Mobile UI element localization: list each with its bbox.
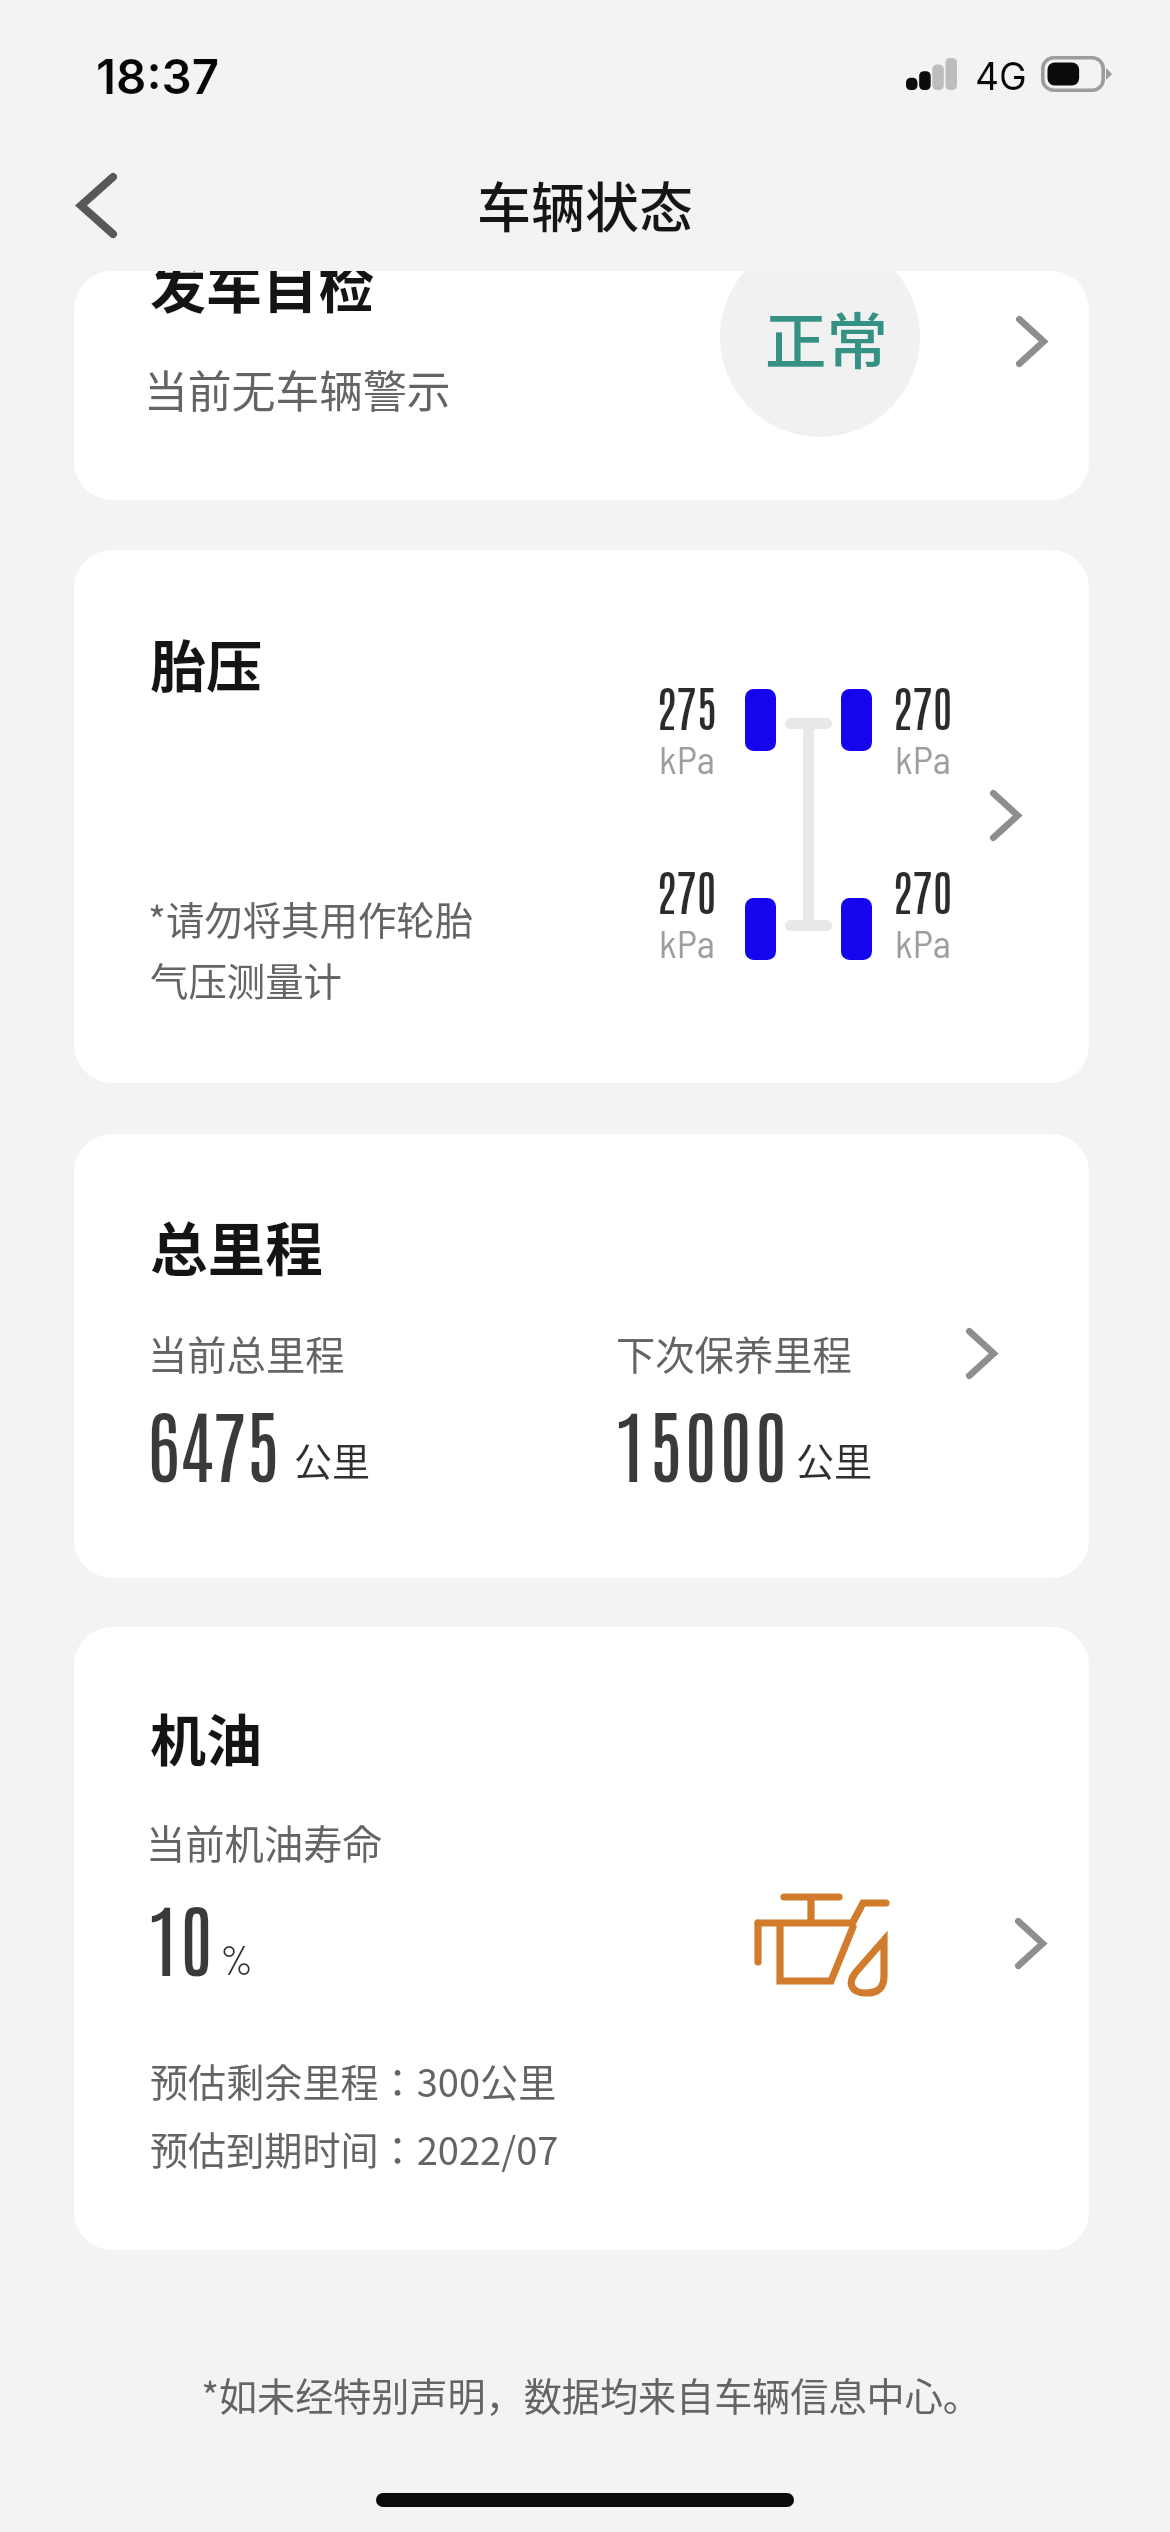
staticText: 275 (656, 674, 717, 737)
staticText: 预估到期时间：2022/07 (150, 2121, 559, 2176)
staticText: kPa (659, 919, 715, 966)
staticText: 当前机油寿命 (146, 1813, 382, 1870)
staticText: 胎压 (150, 622, 263, 703)
staticText: 6475 (147, 1391, 280, 1493)
staticText: % (220, 1934, 254, 1983)
staticText: 270 (892, 858, 953, 921)
staticText: 18:37 (96, 48, 219, 105)
button[interactable]: 发车目检 (74, 271, 1089, 500)
staticText: 15000 (614, 1391, 790, 1493)
button[interactable]: 机油 (74, 1627, 1089, 2250)
other: Oil level (754, 1893, 894, 1995)
staticText: 公里 (294, 1432, 371, 1487)
staticText: 270 (656, 858, 717, 921)
staticText: 预估剩余里程：300公里 (150, 2053, 557, 2108)
staticText: 下次保养里程 (616, 1324, 852, 1381)
staticText: 10 (147, 1885, 214, 1987)
button[interactable]: 胎压 (74, 550, 1089, 1083)
staticText: kPa (659, 735, 715, 782)
staticText: 气压测量计 (150, 951, 342, 1007)
staticText: 机油 (150, 1696, 263, 1777)
staticText: 总里程 (150, 1204, 323, 1287)
staticText: 4G (975, 54, 1027, 99)
staticText: 公里 (796, 1432, 873, 1487)
staticText: 当前总里程 (148, 1324, 345, 1381)
staticText: kPa (895, 919, 951, 966)
staticText: 当前无车辆警示 (144, 357, 451, 420)
staticText: 正常 (765, 293, 889, 382)
button[interactable]: Back (27, 135, 167, 275)
button[interactable]: 总里程 (74, 1134, 1089, 1578)
staticText: 车辆状态 (477, 165, 693, 243)
staticText: kPa (895, 735, 951, 782)
staticText: *如未经特别声明，数据均来自车辆信息中心。 (6, 2367, 1170, 2422)
staticText: 发车目检 (150, 271, 375, 324)
staticText: *请勿将其用作轮胎 (148, 890, 474, 946)
staticText: 270 (892, 674, 953, 737)
